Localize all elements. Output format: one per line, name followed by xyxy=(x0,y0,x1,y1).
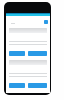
button[interactable] xyxy=(28,51,47,56)
button[interactable]: Add xyxy=(44,20,48,24)
button[interactable] xyxy=(9,83,25,88)
button[interactable] xyxy=(9,51,25,56)
button[interactable] xyxy=(28,83,47,88)
button[interactable] xyxy=(9,60,47,65)
button[interactable] xyxy=(9,28,47,33)
